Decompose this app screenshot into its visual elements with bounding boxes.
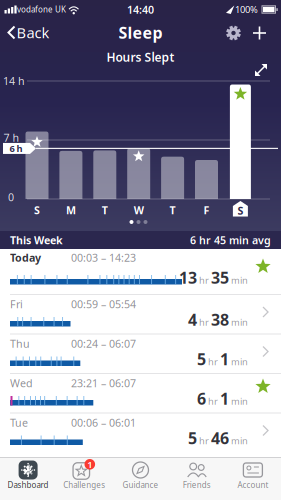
- staticText: S: [237, 203, 243, 218]
- staticText: 00:03 – 14:23: [71, 250, 136, 265]
- button[interactable]: Thu: [0, 333, 281, 373]
- staticText: Friends: [183, 480, 211, 490]
- staticText: F: [203, 203, 209, 217]
- staticText: Back: [16, 23, 49, 42]
- staticText: T: [170, 203, 176, 217]
- staticText: hr: [208, 395, 218, 407]
- staticText: 38: [211, 309, 229, 330]
- staticText: This Week: [10, 233, 63, 247]
- staticText: 23:21 – 06:07: [71, 376, 136, 390]
- staticText: 14:40: [127, 2, 154, 17]
- staticText: W: [134, 203, 144, 217]
- button[interactable]: Fri: [0, 294, 281, 333]
- staticText: 35: [211, 267, 229, 288]
- staticText: S: [34, 203, 40, 217]
- staticText: Challenges: [63, 480, 105, 490]
- button[interactable]: Guidance: [112, 457, 169, 500]
- staticText: Fri: [10, 297, 23, 311]
- staticText: 14 h: [3, 74, 25, 88]
- staticText: Tue: [10, 415, 28, 430]
- staticText: Thu: [10, 336, 30, 351]
- staticText: 00:24 – 06:07: [71, 336, 136, 351]
- button[interactable]: 1: [56, 457, 112, 500]
- staticText: 6 h: [9, 142, 22, 155]
- button[interactable]: Account: [225, 457, 281, 500]
- staticText: 6 hr 45 min avg: [190, 233, 271, 247]
- staticText: Account: [237, 480, 268, 490]
- staticText: 7 h: [3, 130, 19, 145]
- staticText: min: [231, 274, 248, 286]
- button[interactable]: Back: [6, 20, 56, 45]
- staticText: 0: [8, 190, 14, 204]
- staticText: Dashboard: [8, 480, 49, 490]
- staticText: 46: [211, 427, 229, 449]
- button[interactable]: Friends: [169, 457, 225, 500]
- staticText: T: [102, 203, 108, 217]
- staticText: Today: [10, 250, 41, 265]
- button[interactable]: Dashboard: [0, 457, 56, 500]
- staticText: Hours Slept: [106, 49, 174, 65]
- staticText: min: [231, 434, 248, 447]
- staticText: Wed: [10, 376, 33, 390]
- staticText: 5: [188, 427, 197, 449]
- staticText: 1: [220, 388, 229, 409]
- staticText: hr: [208, 355, 218, 368]
- staticText: Guidance: [122, 480, 158, 490]
- staticText: 1: [87, 458, 92, 470]
- staticText: 4: [188, 309, 197, 330]
- staticText: min: [231, 355, 248, 368]
- staticText: hr: [199, 434, 209, 447]
- button[interactable]: Tue: [0, 412, 281, 452]
- staticText: hr: [199, 274, 209, 286]
- staticText: 100%: [235, 3, 258, 16]
- button[interactable]: [249, 23, 269, 43]
- staticText: vodafone UK: [17, 4, 66, 15]
- button[interactable]: [252, 61, 270, 79]
- staticText: M: [66, 203, 76, 217]
- staticText: 00:06 – 06:01: [71, 415, 136, 430]
- button[interactable]: Wed: [0, 373, 281, 412]
- staticText: 5: [197, 348, 206, 370]
- staticText: 6: [197, 388, 206, 409]
- staticText: Sleep: [118, 22, 162, 43]
- staticText: hr: [199, 316, 209, 328]
- button[interactable]: Today: [0, 249, 281, 294]
- staticText: min: [231, 316, 248, 328]
- staticText: 13: [179, 267, 197, 288]
- staticText: 00:59 – 05:54: [71, 297, 136, 311]
- staticText: 1: [220, 348, 229, 370]
- staticText: min: [231, 395, 248, 407]
- button[interactable]: [221, 21, 245, 45]
